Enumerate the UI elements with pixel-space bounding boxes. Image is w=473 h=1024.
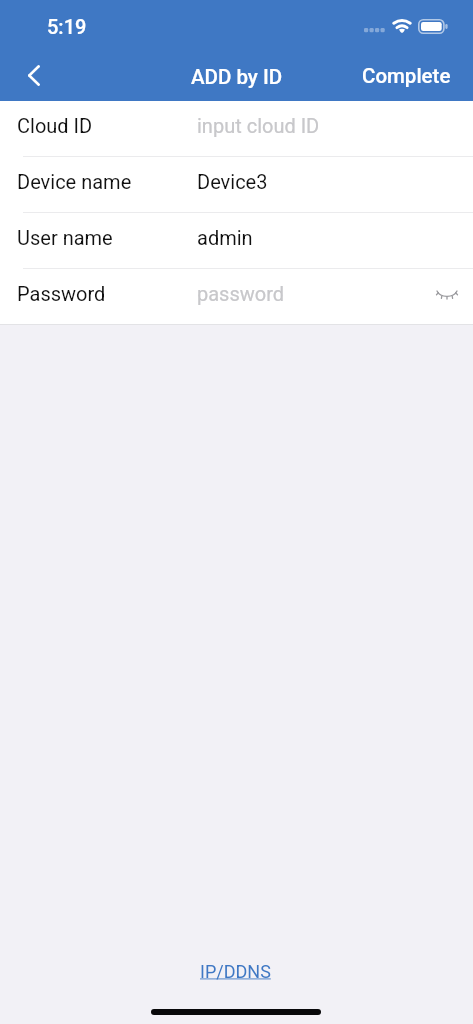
button[interactable]: Cloud ID bbox=[0, 101, 473, 156]
staticText: Complete bbox=[362, 64, 451, 88]
staticText: Device name bbox=[17, 170, 132, 193]
staticText: input cloud ID bbox=[197, 114, 320, 137]
staticText: password bbox=[197, 282, 285, 305]
button[interactable]: Back bbox=[11, 54, 56, 96]
staticText: Device3 bbox=[197, 170, 268, 193]
staticText: ADD by ID bbox=[191, 65, 283, 89]
staticText: Cloud ID bbox=[17, 114, 93, 137]
staticText: IP/DDNS bbox=[200, 961, 271, 982]
button[interactable]: IP/DDNS bbox=[188, 953, 283, 990]
button[interactable]: Password bbox=[0, 269, 473, 324]
staticText: Password bbox=[17, 282, 106, 305]
staticText: User name bbox=[17, 226, 113, 249]
button[interactable]: User name bbox=[0, 213, 473, 268]
button[interactable]: Complete bbox=[350, 54, 463, 96]
button[interactable]: Show password bbox=[425, 273, 469, 317]
staticText: 5:19 bbox=[47, 15, 87, 38]
button[interactable]: Device name bbox=[0, 157, 473, 212]
staticText: admin bbox=[197, 226, 253, 249]
